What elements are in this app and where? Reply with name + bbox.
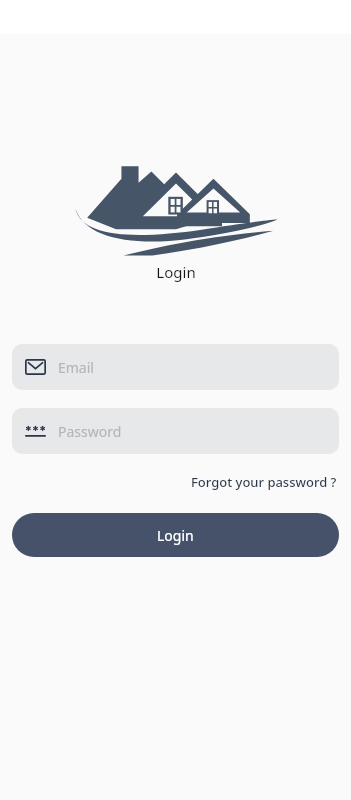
staticText: Password bbox=[58, 422, 122, 441]
button[interactable]: Forgot your password ? bbox=[189, 469, 339, 495]
staticText: Login bbox=[156, 262, 196, 282]
staticText: Email bbox=[58, 358, 94, 377]
button[interactable]: Password input bbox=[12, 408, 339, 454]
staticText: Forgot your password ? bbox=[191, 473, 337, 491]
button[interactable]: Email input bbox=[12, 344, 339, 390]
staticText: Login bbox=[157, 526, 194, 545]
button[interactable]: Login bbox=[12, 513, 339, 557]
